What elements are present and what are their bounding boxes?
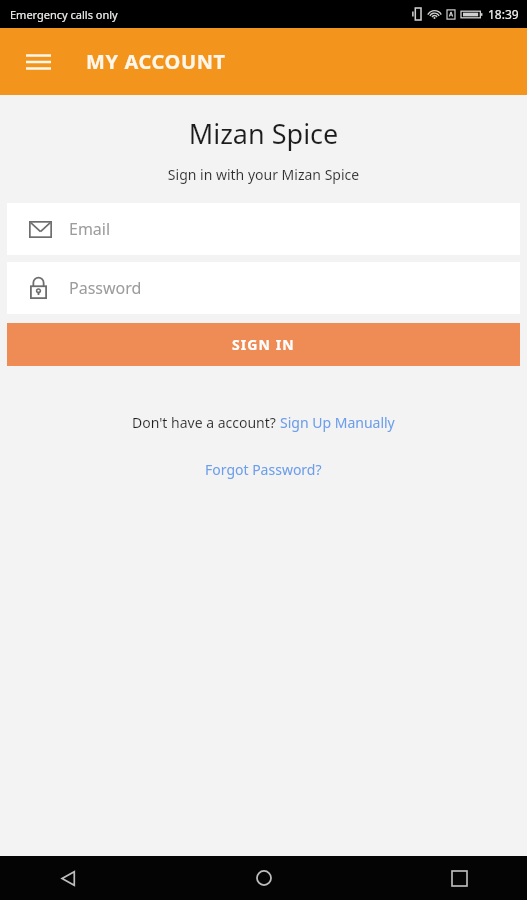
staticText: Don't have a account? [132, 413, 280, 432]
button[interactable]: Sign Up Manually [280, 413, 395, 432]
staticText: MY ACCOUNT [86, 48, 226, 75]
button[interactable]: Home [236, 856, 292, 900]
button[interactable]: Forgot Password? [205, 460, 322, 479]
staticText: Sign in with your Mizan Spice [0, 165, 527, 184]
staticText: 18:39 [488, 6, 519, 22]
staticText: Forgot Password? [205, 460, 322, 479]
button[interactable]: Password [7, 262, 520, 314]
button[interactable]: Open navigation menu [14, 38, 62, 86]
staticText: Sign Up Manually [280, 413, 395, 432]
staticText: Mizan Spice [0, 115, 527, 152]
staticText: Emergency calls only [10, 7, 118, 22]
staticText: Email [69, 218, 111, 240]
button[interactable]: Email [7, 203, 520, 255]
button[interactable]: Back [40, 856, 96, 900]
staticText: SIGN IN [232, 335, 295, 354]
button[interactable]: SIGN IN [7, 323, 520, 366]
button[interactable]: Recent apps [431, 856, 487, 900]
staticText: Password [69, 277, 142, 299]
